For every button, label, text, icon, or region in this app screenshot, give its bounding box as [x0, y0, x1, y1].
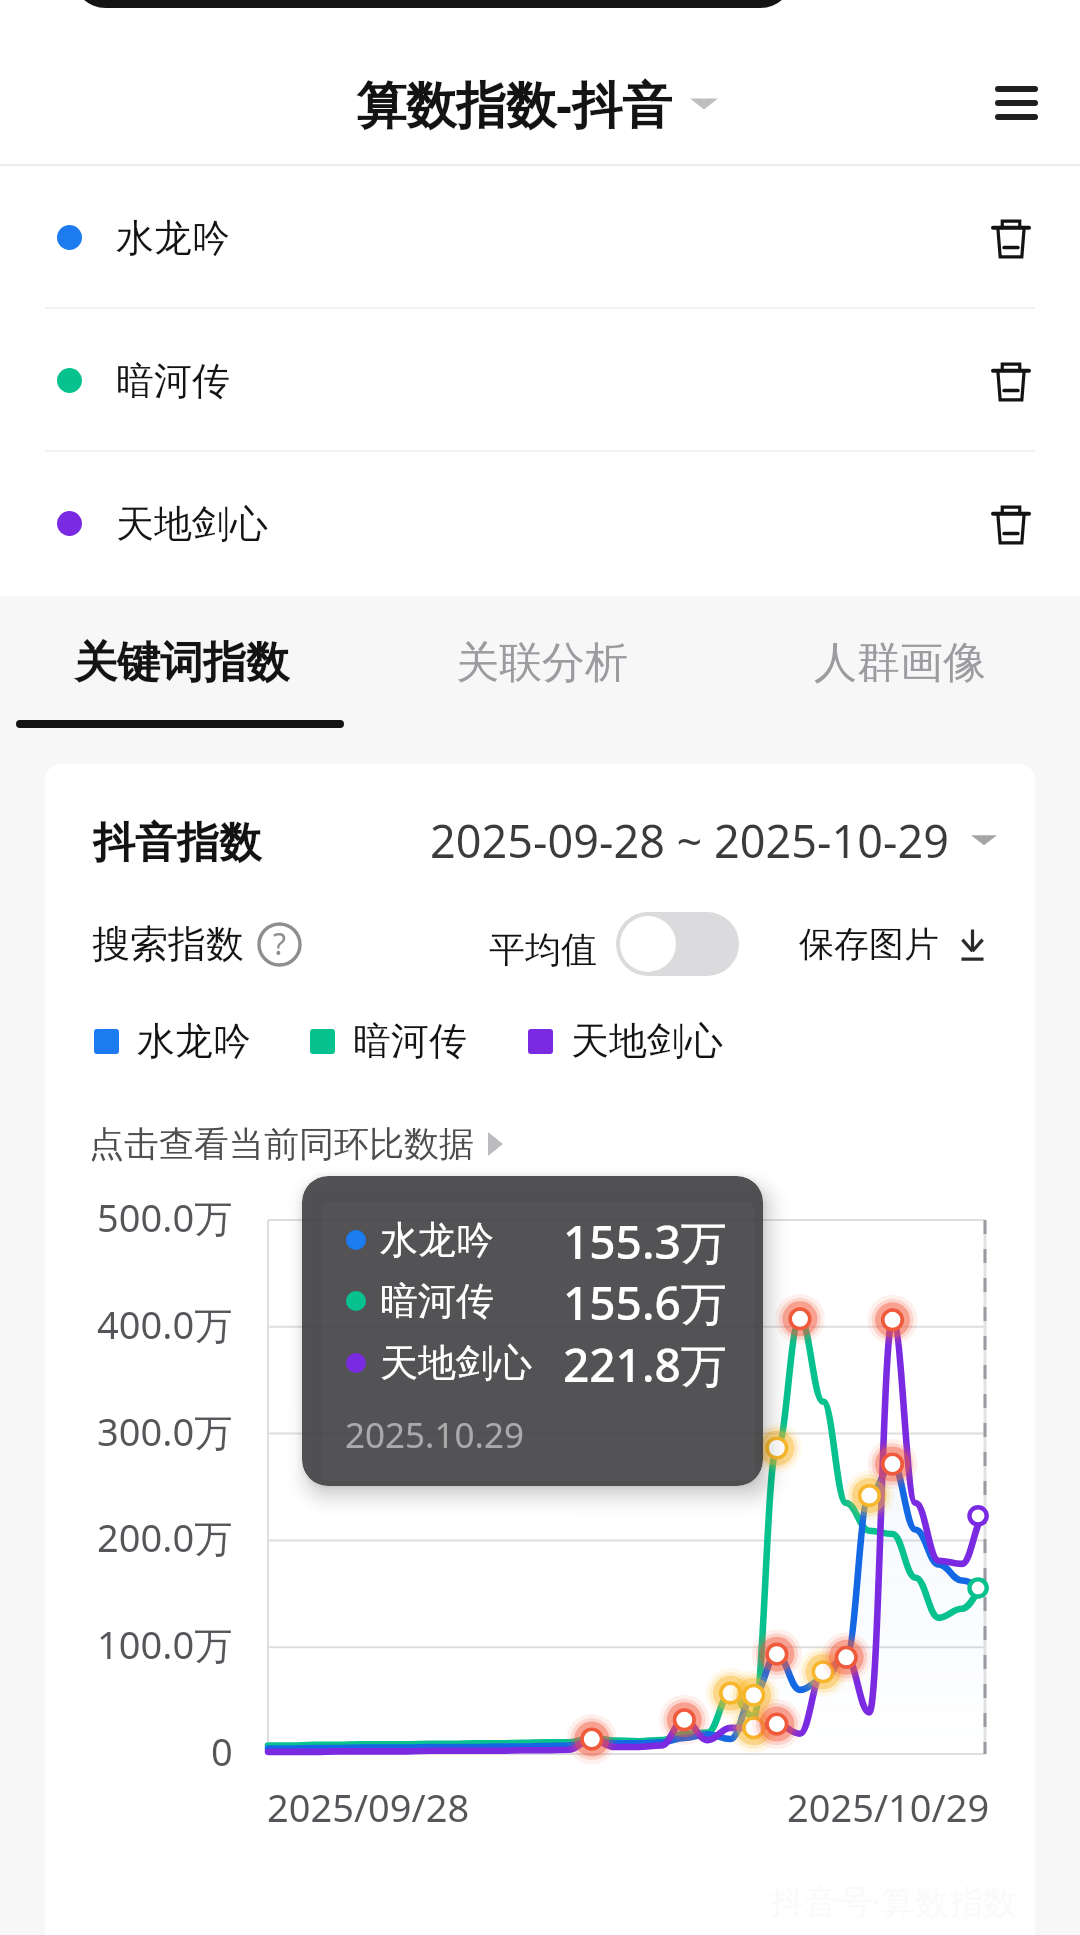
staticText: 200.0万: [97, 1511, 233, 1563]
staticText: 天地剑心: [116, 500, 268, 548]
staticText: 关联分析: [456, 636, 628, 690]
staticText: 点击查看当前同环比数据: [89, 1122, 474, 1166]
button[interactable]: Average toggle: [616, 912, 739, 976]
button[interactable]: 关联分析: [360, 596, 704, 764]
staticText: 保存图片: [799, 922, 939, 966]
staticText: 算数指数-抖音: [356, 70, 672, 138]
staticText: ?: [273, 923, 287, 964]
staticText: 2025/09/28: [267, 1781, 470, 1833]
staticText: 2025-09-28 ~ 2025-10-29: [430, 810, 949, 871]
button[interactable]: 天地剑心: [0, 452, 1080, 595]
button[interactable]: Menu: [968, 54, 1065, 151]
button[interactable]: 2025-09-28 ~ 2025-10-29: [430, 809, 997, 871]
button[interactable]: Delete 水龙吟: [963, 190, 1059, 286]
button[interactable]: 保存图片: [799, 914, 984, 974]
button[interactable]: Delete 暗河传: [963, 333, 1059, 429]
staticText: 400.0万: [97, 1298, 233, 1350]
staticText: 平均值: [489, 927, 597, 972]
button[interactable]: 关键词指数: [16, 596, 344, 764]
staticText: 300.0万: [97, 1405, 233, 1457]
staticText: 天地剑心: [380, 1339, 532, 1387]
staticText: 水龙吟: [137, 1017, 251, 1065]
staticText: 抖音指数: [93, 817, 261, 870]
button[interactable]: 暗河传: [0, 309, 1080, 452]
button[interactable]: Delete 天地剑心: [963, 476, 1059, 572]
staticText: 水龙吟: [116, 214, 230, 262]
staticText: 搜索指数: [92, 920, 244, 968]
staticText: 2025/10/29: [787, 1781, 990, 1833]
staticText: 暗河传: [380, 1277, 494, 1325]
staticText: 0: [211, 1725, 233, 1777]
staticText: 关键词指数: [74, 636, 289, 690]
button[interactable]: 天地剑心: [528, 1011, 723, 1071]
button[interactable]: 搜索指数: [92, 914, 302, 974]
button[interactable]: 水龙吟: [94, 1011, 251, 1071]
button[interactable]: 暗河传: [310, 1011, 467, 1071]
staticText: 100.0万: [97, 1618, 233, 1670]
button[interactable]: 人群画像: [718, 596, 1062, 764]
staticText: 2025.10.29: [345, 1411, 524, 1459]
staticText: 500.0万: [97, 1191, 233, 1243]
staticText: 155.6万: [563, 1271, 727, 1331]
button[interactable]: 水龙吟: [0, 166, 1080, 309]
staticText: 水龙吟: [380, 1216, 494, 1264]
button[interactable]: 点击查看当前同环比数据: [89, 1116, 503, 1172]
staticText: 221.8万: [563, 1333, 727, 1393]
staticText: 暗河传: [353, 1017, 467, 1065]
staticText: 天地剑心: [571, 1017, 723, 1065]
other: Help: [257, 922, 302, 967]
staticText: 暗河传: [116, 357, 230, 405]
staticText: 155.3万: [563, 1210, 727, 1270]
staticText: 人群画像: [814, 636, 986, 690]
button[interactable]: 算数指数-抖音: [356, 62, 718, 146]
